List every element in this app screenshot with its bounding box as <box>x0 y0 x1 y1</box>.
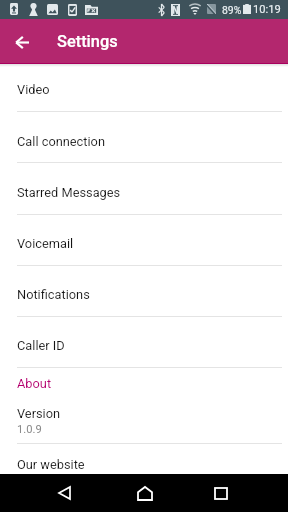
staticText: Call connection <box>17 134 105 149</box>
button[interactable]: Starred Messages <box>0 162 288 213</box>
staticText: Notifications <box>17 287 90 302</box>
button[interactable]: Caller ID <box>0 316 288 367</box>
button[interactable]: Call connection <box>0 111 288 162</box>
staticText: 89% <box>222 4 242 16</box>
staticText: Video <box>17 82 50 97</box>
button[interactable]: Navigate up <box>7 27 37 57</box>
staticText: 10:19 <box>253 3 281 16</box>
button[interactable]: Notifications <box>0 265 288 316</box>
button[interactable]: Voicemail <box>0 214 288 265</box>
button[interactable]: Version 1.0.9 <box>0 397 288 443</box>
staticText: Caller ID <box>17 338 65 353</box>
staticText: About <box>17 376 52 391</box>
staticText: Voicemail <box>17 236 74 251</box>
button[interactable]: Video <box>0 64 288 111</box>
staticText: Starred Messages <box>17 185 121 200</box>
staticText: Settings <box>57 32 118 51</box>
button[interactable]: Home <box>121 474 169 512</box>
staticText: Our website <box>17 457 85 472</box>
staticText: 1.0.9 <box>17 423 42 436</box>
staticText: Version <box>17 406 61 421</box>
button[interactable]: Our website <box>0 443 288 483</box>
button[interactable]: Back <box>40 474 88 512</box>
button[interactable]: Recent apps <box>197 474 245 512</box>
